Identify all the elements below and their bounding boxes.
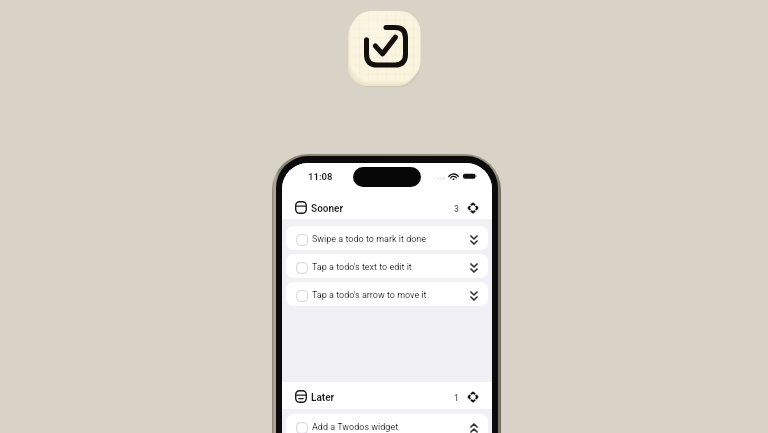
button[interactable]: Later — [282, 382, 492, 409]
button[interactable]: Move to Later — [467, 261, 479, 273]
staticText: 11:08 — [308, 171, 333, 182]
staticText: Swipe a todo to mark it done — [312, 234, 427, 245]
staticText: Add a Twodos widget — [312, 422, 399, 433]
staticText: 3 — [454, 204, 459, 214]
staticText: Later — [311, 392, 335, 404]
button[interactable]: Swipe a todo to mark it done — [286, 226, 488, 250]
staticText: 1 — [454, 393, 459, 403]
staticText: Tap a todo's arrow to move it — [312, 290, 427, 301]
button[interactable]: Move to Later — [467, 289, 479, 301]
staticText: Tap a todo's text to edit it — [312, 262, 412, 273]
staticText: Sooner — [311, 203, 344, 215]
button[interactable]: Tap a todo's text to edit it — [286, 254, 488, 278]
button[interactable]: Reorder Sooner list — [468, 203, 480, 215]
button[interactable]: Move to Later — [467, 233, 479, 245]
button[interactable]: Tap a todo's arrow to move it — [286, 282, 488, 306]
button[interactable]: Move to Sooner — [467, 421, 479, 433]
button[interactable]: Add a Twodos widget — [286, 414, 488, 433]
button[interactable]: Reorder Later list — [468, 392, 480, 404]
button[interactable]: Sooner — [282, 190, 492, 219]
